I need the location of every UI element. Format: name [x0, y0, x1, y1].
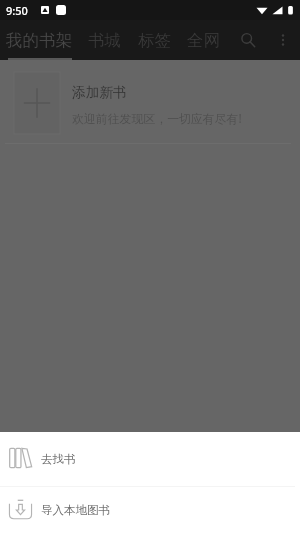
button[interactable]: 书城: [80, 20, 129, 60]
button[interactable]: More options: [268, 25, 298, 55]
staticText: 标签: [138, 30, 171, 51]
staticText: 我的书架: [6, 30, 72, 51]
staticText: 9:50: [6, 3, 28, 18]
button[interactable]: 导入本地图书: [0, 487, 300, 533]
staticText: 欢迎前往发现区，一切应有尽有!: [72, 110, 242, 126]
button[interactable]: 标签: [129, 20, 179, 60]
button[interactable]: 全网: [179, 20, 228, 60]
staticText: 导入本地图书: [41, 503, 110, 517]
staticText: 去找书: [41, 452, 76, 466]
button[interactable]: 我的书架: [0, 20, 80, 60]
staticText: 全网: [187, 30, 220, 51]
button[interactable]: Search: [228, 20, 268, 60]
staticText: 添加新书: [72, 84, 127, 101]
button[interactable]: 去找书: [0, 432, 300, 486]
button[interactable]: 添加新书: [0, 60, 300, 143]
staticText: 书城: [88, 30, 121, 51]
